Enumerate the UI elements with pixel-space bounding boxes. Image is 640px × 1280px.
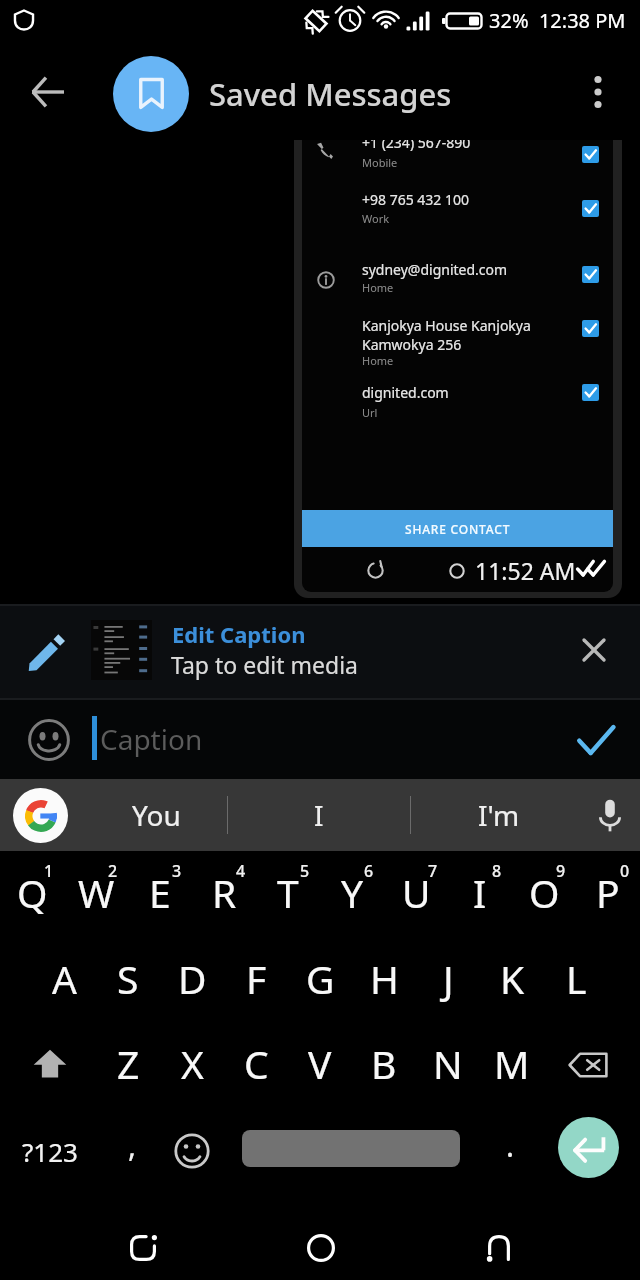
staticText: G [306, 952, 335, 1005]
button[interactable]: D [160, 939, 224, 1019]
button[interactable]: +98 765 432 100 [302, 190, 613, 234]
button[interactable]: Google search [4, 779, 76, 851]
staticText: I [314, 796, 324, 834]
staticText: B [371, 1037, 397, 1090]
staticText: Caption [100, 720, 203, 758]
button[interactable]: ?123 [0, 1109, 100, 1193]
staticText: D [178, 952, 207, 1005]
button[interactable]: Close [562, 618, 626, 682]
staticText: ?123 [22, 1134, 78, 1169]
staticText: F [246, 952, 267, 1005]
staticText: +1 (234) 567-890 [362, 140, 471, 152]
staticText: 6 [364, 860, 374, 882]
button[interactable]: sydney@dignited.com [302, 260, 613, 304]
button[interactable]: Q [0, 851, 64, 931]
button[interactable]: . [478, 1109, 542, 1193]
staticText: L [566, 952, 587, 1005]
button[interactable]: I [448, 851, 512, 931]
staticText: You [132, 796, 181, 834]
button[interactable]: You [80, 779, 227, 851]
button[interactable]: O [512, 851, 576, 931]
button[interactable]: Edit [8, 614, 84, 690]
button[interactable]: W [64, 851, 128, 931]
button[interactable]: Recent apps [463, 1212, 535, 1280]
button[interactable]: Selected [582, 384, 599, 401]
button[interactable]: +1 (234) 567-890 [294, 140, 622, 598]
staticText: Work [362, 211, 390, 226]
button[interactable]: Y [320, 851, 384, 931]
button[interactable]: S [96, 939, 160, 1019]
staticText: 4 [236, 860, 246, 882]
button[interactable]: V [288, 1025, 352, 1105]
button[interactable]: G [288, 939, 352, 1019]
staticText: 9 [556, 860, 566, 882]
button[interactable]: Selected [582, 200, 599, 217]
staticText: K [500, 952, 525, 1005]
staticText: Tap to edit media [171, 649, 358, 680]
staticText: Url [362, 405, 378, 420]
button[interactable]: +1 (234) 567-890 [302, 140, 613, 177]
button[interactable]: M [480, 1025, 544, 1105]
staticText: 8 [492, 860, 502, 882]
button[interactable]: C [224, 1025, 288, 1105]
button[interactable]: SHARE CONTACT [302, 510, 613, 547]
staticText: , [128, 1125, 137, 1166]
button[interactable]: R [192, 851, 256, 931]
button[interactable]: Enter [542, 1109, 640, 1193]
staticText: 0 [620, 860, 630, 882]
button[interactable]: Selected [582, 266, 599, 283]
staticText: SHARE CONTACT [405, 521, 511, 537]
button[interactable]: Home [285, 1212, 357, 1280]
button[interactable]: Send [560, 700, 632, 779]
staticText: 32% 12:38 PM [489, 7, 626, 34]
button[interactable]: Selected [582, 320, 599, 337]
button[interactable]: H [352, 939, 416, 1019]
staticText: 2 [108, 860, 118, 882]
button[interactable]: L [544, 939, 608, 1019]
button[interactable] [228, 1109, 474, 1193]
staticText: Kanjokya House Kanjokya Kamwokya 256 [362, 316, 531, 354]
button[interactable]: Back [16, 60, 80, 124]
button[interactable]: Voice input [576, 779, 640, 851]
button[interactable]: Selected [582, 146, 599, 163]
button[interactable]: Shift [0, 1025, 96, 1105]
staticText: J [443, 952, 454, 1005]
button[interactable]: X [160, 1025, 224, 1105]
button[interactable]: B [352, 1025, 416, 1105]
staticText: I'm [478, 796, 520, 834]
staticText: dignited.com [362, 383, 449, 402]
button[interactable]: I'm [411, 779, 576, 851]
button[interactable]: Emoji [9, 700, 89, 779]
button[interactable]: F [224, 939, 288, 1019]
button[interactable]: Saved Messages [113, 56, 189, 132]
button[interactable]: K [480, 939, 544, 1019]
staticText: sydney@dignited.com [362, 260, 508, 279]
button[interactable]: , [100, 1109, 164, 1193]
button[interactable]: P [576, 851, 640, 931]
button[interactable]: U [384, 851, 448, 931]
staticText: Y [341, 866, 364, 919]
button[interactable]: Backspace [544, 1025, 640, 1105]
button[interactable]: Back [107, 1212, 179, 1280]
staticText: A [52, 952, 77, 1005]
button[interactable]: I [228, 779, 410, 851]
button[interactable]: T [256, 851, 320, 931]
staticText: C [244, 1037, 269, 1090]
staticText: E [149, 866, 171, 919]
staticText: Q [17, 866, 48, 919]
button[interactable]: Emoji keyboard [160, 1109, 224, 1193]
staticText: Mobile [362, 155, 398, 170]
staticText: M [494, 1037, 530, 1090]
button[interactable]: Kanjokya House Kanjokya Kamwokya 256 [302, 316, 613, 360]
staticText: U [402, 866, 431, 919]
button[interactable]: J [416, 939, 480, 1019]
staticText: Edit Caption [172, 619, 306, 649]
button[interactable]: More options [562, 56, 634, 128]
button[interactable]: N [416, 1025, 480, 1105]
staticText: R [212, 866, 237, 919]
button[interactable]: A [32, 939, 96, 1019]
button[interactable]: dignited.com [302, 383, 613, 427]
button[interactable]: Z [96, 1025, 160, 1105]
button[interactable]: E [128, 851, 192, 931]
staticText: Saved Messages [209, 73, 452, 115]
